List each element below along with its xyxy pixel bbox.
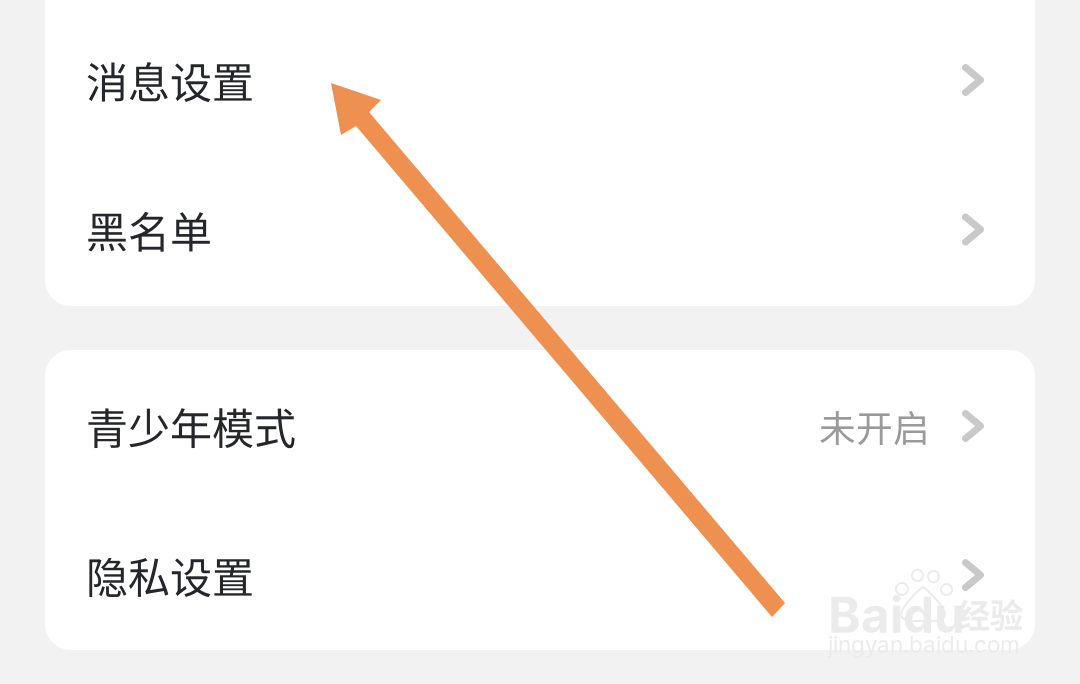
button[interactable]: 消息设置	[45, 3, 1035, 157]
button[interactable]: 隐私设置	[45, 500, 1035, 650]
staticText: Baidu	[828, 585, 965, 645]
staticText: 隐私设置	[86, 545, 254, 605]
staticText: 经验	[957, 589, 1023, 637]
button[interactable]: 青少年模式	[45, 350, 1035, 502]
button[interactable]: 黑名单	[45, 155, 1035, 304]
staticText: 消息设置	[86, 50, 254, 110]
staticText: 黑名单	[86, 199, 212, 260]
staticText: jingyan.baidu.com	[828, 631, 1020, 658]
staticText: 青少年模式	[86, 396, 296, 456]
staticText: 未开启	[819, 399, 930, 453]
